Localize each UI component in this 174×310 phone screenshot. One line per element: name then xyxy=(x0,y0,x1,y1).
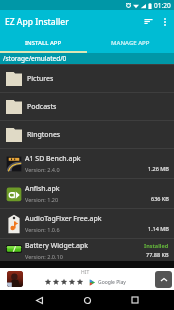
staticText: 636 KB xyxy=(151,195,169,202)
button[interactable]: Battery Widget.apk xyxy=(0,239,174,261)
button[interactable]: HIT xyxy=(0,268,174,290)
button[interactable]: Pictures xyxy=(0,65,174,92)
button[interactable]: Expand advertisement xyxy=(155,271,172,288)
staticText: 1.14 MB xyxy=(148,225,169,232)
staticText: Battery Widget.apk xyxy=(25,241,89,251)
staticText: Version: 1.0.6 xyxy=(25,226,60,233)
staticText: Pictures xyxy=(27,74,54,84)
staticText: Podcasts xyxy=(27,102,57,112)
button[interactable]: AudioTagFixer Free.apk xyxy=(0,209,174,238)
button[interactable]: Sort xyxy=(139,10,157,33)
staticText: HIT xyxy=(81,269,90,276)
staticText: MANAGE APP xyxy=(111,39,150,47)
button[interactable]: INSTALL APP xyxy=(0,33,87,53)
staticText: /storage/emulated/0 xyxy=(3,54,67,63)
staticText: EZ App Installer xyxy=(5,16,69,28)
staticText: 77.88 KB xyxy=(146,251,169,258)
button[interactable]: Back xyxy=(24,290,54,310)
staticText: Ringtones xyxy=(27,130,61,140)
staticText: Anfish.apk xyxy=(25,184,60,194)
staticText: A1 SD Bench.apk xyxy=(25,154,81,164)
button[interactable]: Ringtones xyxy=(0,121,174,148)
staticText: INSTALL APP xyxy=(25,39,62,47)
button[interactable]: Home xyxy=(72,290,102,310)
button[interactable]: MANAGE APP xyxy=(87,33,174,53)
staticText: Google Play xyxy=(98,279,126,286)
staticText: 01:20 xyxy=(154,1,171,10)
button[interactable]: Podcasts xyxy=(0,93,174,120)
button[interactable]: More options xyxy=(157,10,173,33)
staticText: Version: 2.4.0 xyxy=(25,166,60,173)
staticText: Version: 1.20 xyxy=(25,196,59,203)
button[interactable]: Recent apps xyxy=(120,290,150,310)
button[interactable]: /storage/emulated/0 xyxy=(0,53,174,64)
staticText: Version: 2.0.10 xyxy=(25,253,63,260)
staticText: AudioTagFixer Free.apk xyxy=(25,214,102,224)
staticText: Installed xyxy=(144,242,169,249)
button[interactable]: Anfish.apk xyxy=(0,179,174,208)
staticText: 1.26 MB xyxy=(148,165,169,172)
button[interactable]: A1 SD Bench.apk xyxy=(0,149,174,178)
